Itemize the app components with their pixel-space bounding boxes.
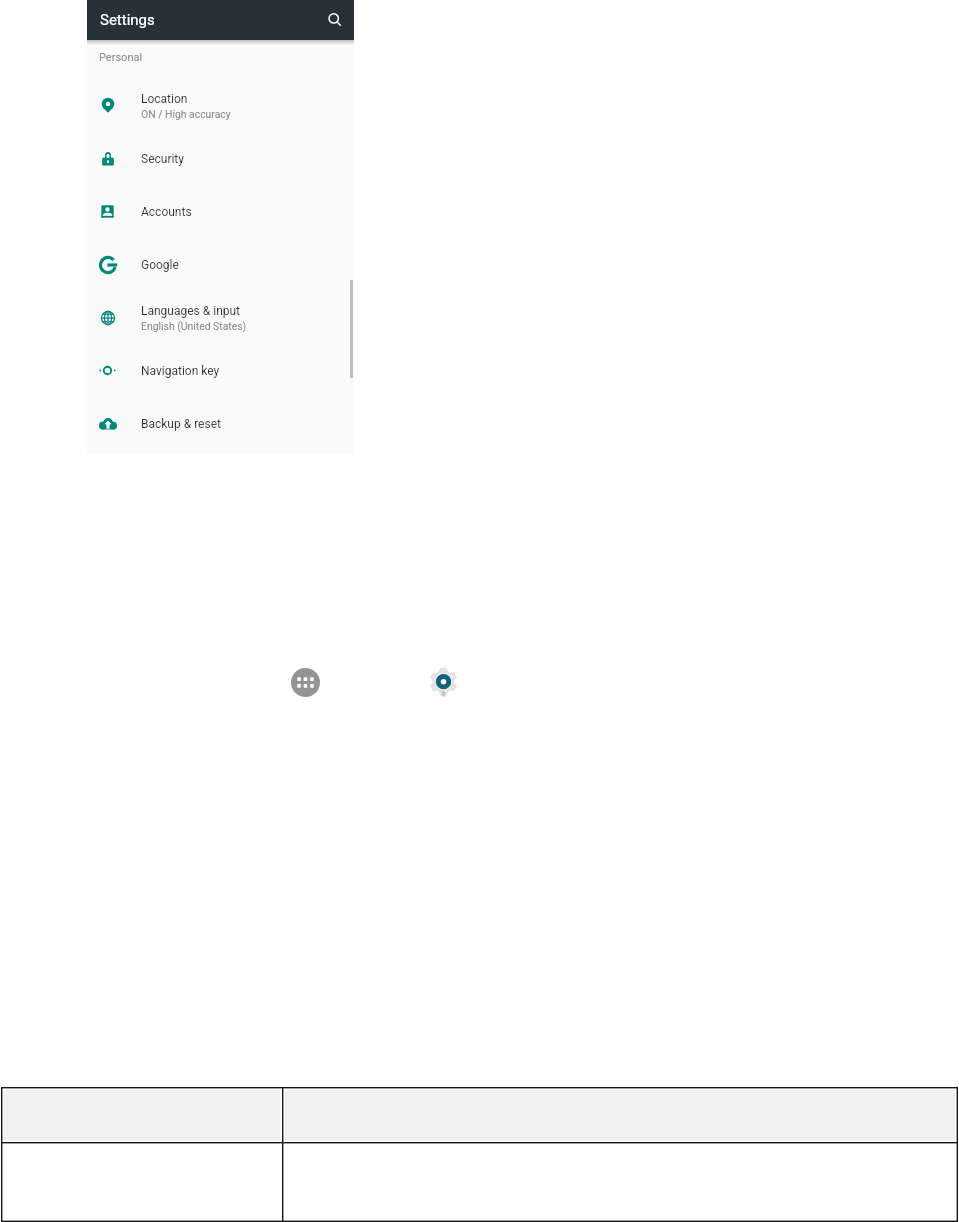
button[interactable]: [282, 1087, 958, 1142]
button[interactable]: Backup & reset: [87, 397, 354, 450]
button[interactable]: Settings: [429, 668, 458, 697]
button[interactable]: Languages & input: [87, 291, 354, 344]
button[interactable]: Settings: [87, 0, 354, 40]
button[interactable]: Navigation key: [87, 344, 354, 397]
staticText: Location: [141, 92, 188, 106]
staticText: Navigation key: [141, 364, 220, 378]
button[interactable]: Search: [318, 3, 352, 37]
staticText: English (United States): [141, 320, 247, 332]
staticText: Google: [141, 258, 179, 272]
button[interactable]: Location: [87, 79, 354, 132]
button[interactable]: Google: [87, 238, 354, 291]
button[interactable]: Accounts: [87, 185, 354, 238]
staticText: Personal: [99, 51, 143, 64]
staticText: Settings: [100, 11, 155, 29]
button[interactable]: [282, 1142, 958, 1222]
staticText: Accounts: [141, 205, 192, 219]
button[interactable]: [1, 1087, 282, 1142]
button[interactable]: All apps: [291, 668, 320, 697]
button[interactable]: Security: [87, 132, 354, 185]
staticText: Security: [141, 152, 184, 166]
staticText: ON / High accuracy: [141, 108, 231, 120]
staticText: Languages & input: [141, 304, 241, 318]
staticText: Backup & reset: [141, 417, 221, 431]
button[interactable]: [1, 1142, 282, 1222]
